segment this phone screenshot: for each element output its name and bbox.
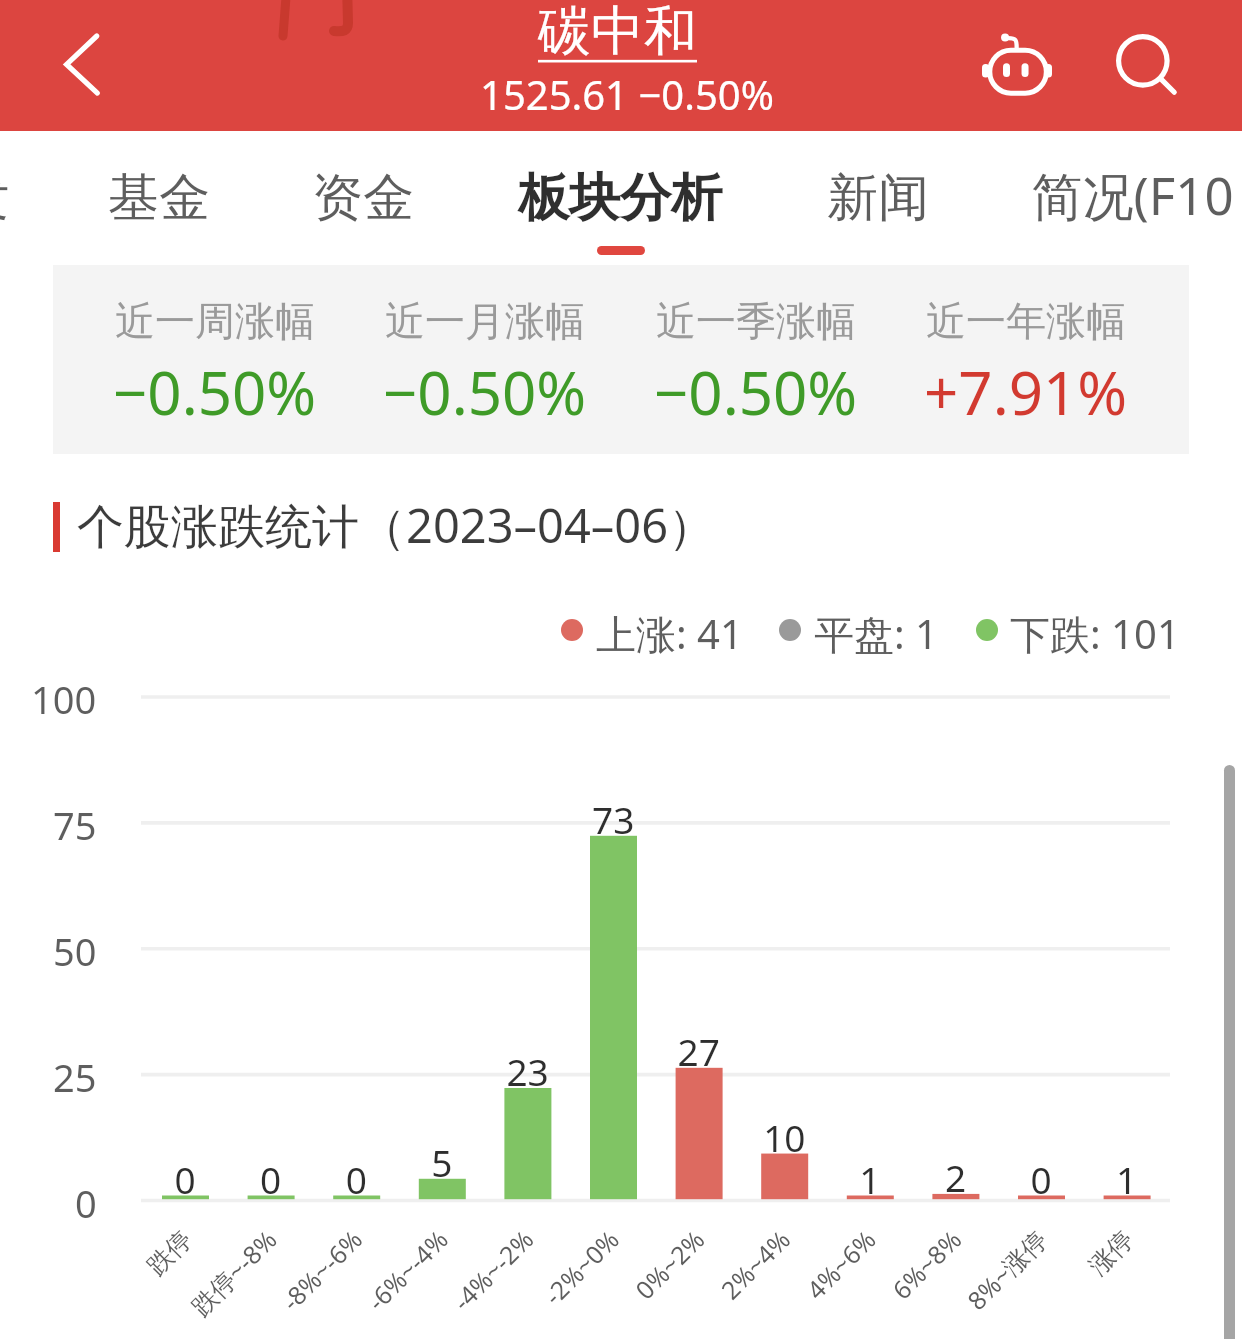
staticText: 碳中和 (538, 0, 697, 65)
staticText: 近一周涨幅 (115, 296, 315, 346)
staticText: 上涨: 41 (596, 606, 743, 654)
button[interactable]: 近一季涨幅 (626, 296, 886, 436)
staticText: 近一月涨幅 (385, 296, 585, 346)
button[interactable]: Search (1090, 12, 1200, 122)
staticText: −0.50% (654, 351, 858, 433)
staticText: −0.50% (113, 351, 317, 433)
staticText: −0.50% (383, 351, 587, 433)
staticText: 个股涨跌统计（2023–04–06） (77, 493, 716, 557)
button[interactable]: 基金 (90, 160, 228, 256)
button[interactable]: 近一月涨幅 (355, 296, 615, 436)
button[interactable]: 近一周涨幅 (85, 296, 345, 436)
staticText: 近一季涨幅 (656, 296, 856, 346)
staticText: 下跌: 101 (1010, 606, 1180, 654)
staticText: 1525.61 −0.50% (480, 67, 774, 121)
button[interactable]: 板块分析 (500, 160, 740, 256)
button[interactable]: Back (38, 18, 134, 114)
button[interactable]: 简况(F10 (962, 160, 1242, 256)
button[interactable]: 上涨: 41 (561, 606, 743, 654)
button[interactable]: 新闻 (809, 160, 947, 256)
button[interactable]: 平盘: 1 (779, 606, 938, 654)
staticText: 平盘: 1 (814, 606, 938, 654)
button[interactable]: 发 (0, 160, 28, 256)
staticText: +7.91% (924, 351, 1128, 433)
button[interactable]: 资金 (294, 160, 432, 256)
staticText: 近一年涨幅 (926, 296, 1126, 346)
button[interactable]: AI assistant (952, 12, 1062, 122)
button[interactable]: 近一年涨幅 (896, 296, 1156, 436)
button[interactable]: 下跌: 101 (976, 606, 1180, 654)
